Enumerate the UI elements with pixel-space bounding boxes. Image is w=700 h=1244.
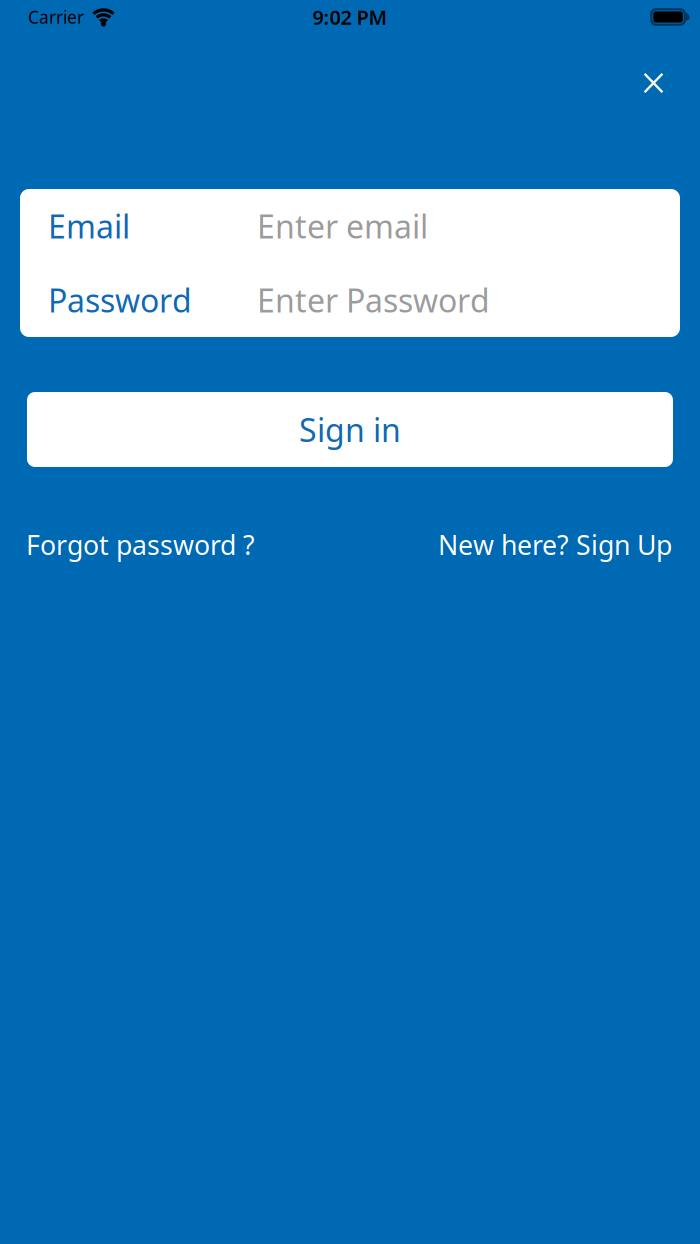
button[interactable]: Forgot password ? — [26, 527, 255, 562]
button[interactable] — [644, 73, 663, 93]
staticText: Enter email — [257, 205, 428, 247]
button[interactable]: Email — [20, 189, 680, 263]
staticText: Password — [48, 279, 192, 321]
staticText: Carrier — [28, 5, 84, 28]
staticText: New here? Sign Up — [438, 527, 672, 562]
staticText: 9:02 PM — [312, 4, 387, 30]
staticText: Email — [48, 205, 130, 247]
button[interactable]: Sign in — [27, 392, 673, 467]
staticText: Forgot password ? — [26, 527, 255, 562]
staticText: Sign in — [299, 408, 401, 451]
button[interactable]: New here? Sign Up — [438, 527, 672, 562]
staticText: Enter Password — [257, 279, 490, 321]
button[interactable]: Password — [20, 263, 680, 337]
